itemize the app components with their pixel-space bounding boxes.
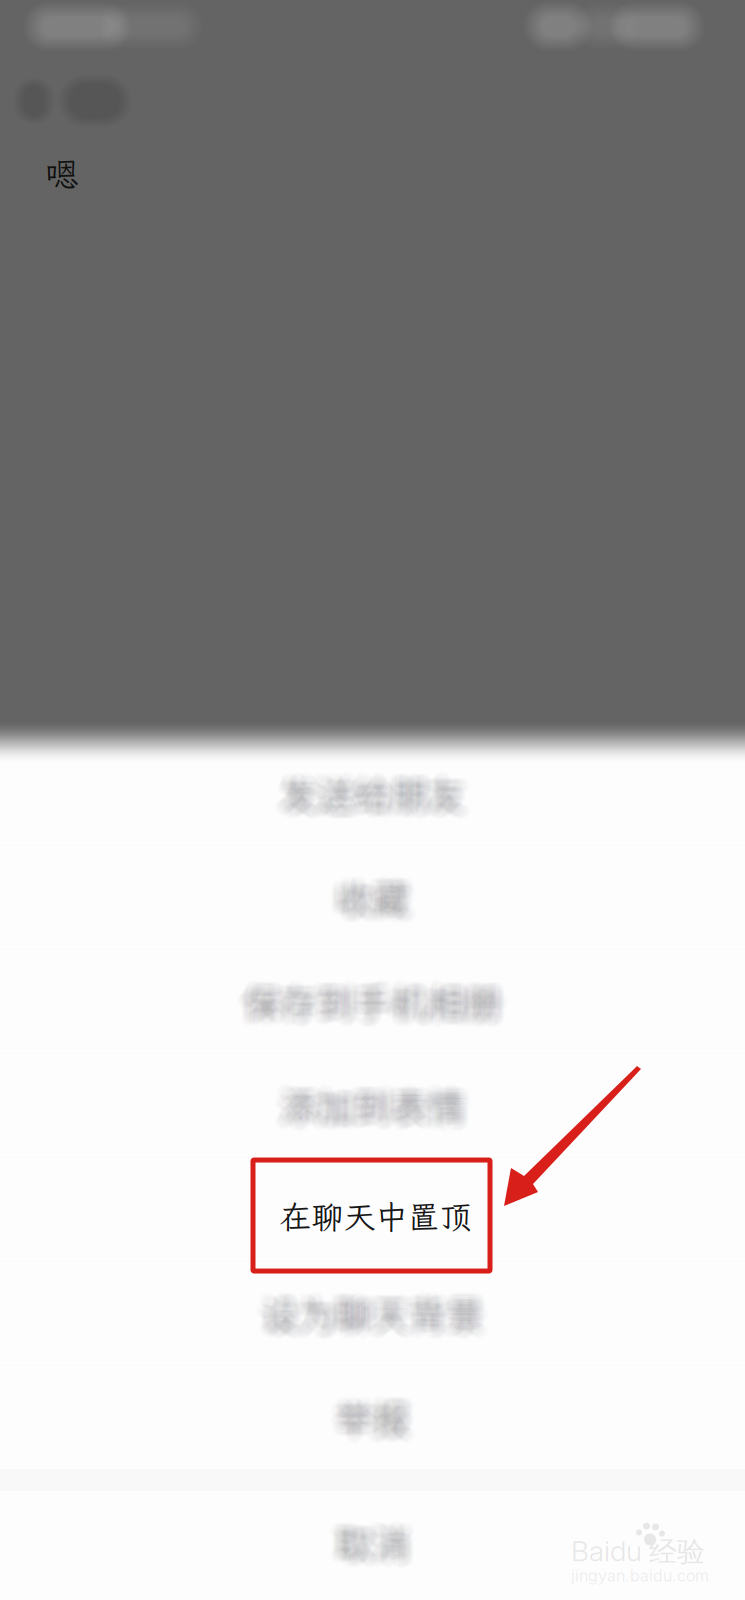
staticText: 添加到表情 — [287, 1077, 472, 1132]
staticText: 保存到手机相册 — [241, 980, 500, 1034]
staticText: 添加到表情 — [282, 1083, 467, 1137]
staticText: 添加到表情 — [280, 1086, 465, 1140]
button[interactable]: 取消 — [0, 1491, 745, 1594]
staticText: 保存到手机相册 — [243, 970, 502, 1024]
staticText: 发送给朋友 — [279, 762, 464, 816]
button[interactable]: 添加到表情 — [0, 1054, 745, 1157]
staticText: 举报 — [334, 1390, 408, 1444]
staticText: 收藏 — [337, 868, 411, 922]
staticText: 保存到手机相册 — [243, 978, 502, 1032]
staticText: 举报 — [341, 1385, 415, 1439]
staticText: 取消 — [333, 1514, 407, 1568]
staticText: 保存到手机相册 — [238, 974, 497, 1028]
staticText: 收藏 — [333, 864, 407, 918]
staticText: 举报 — [337, 1390, 411, 1444]
staticText: 取消 — [338, 1516, 412, 1570]
staticText: 添加到表情 — [281, 1082, 466, 1136]
staticText: 嗯 — [45, 152, 78, 196]
staticText: 设为聊天背景 — [260, 1290, 482, 1344]
staticText: 设为聊天背景 — [258, 1280, 480, 1334]
staticText: 举报 — [338, 1387, 412, 1441]
staticText: 取消 — [328, 1518, 402, 1572]
staticText: 设为聊天背景 — [255, 1290, 477, 1344]
staticText: 添加到表情 — [281, 1073, 466, 1127]
staticText: 收藏 — [330, 867, 404, 921]
staticText: 取消 — [341, 1510, 415, 1564]
staticText: 设为聊天背景 — [261, 1287, 483, 1341]
button[interactable]: 收藏 — [0, 846, 745, 949]
staticText: 收藏 — [335, 871, 409, 925]
staticText: 添加到表情 — [279, 1077, 464, 1131]
staticText: 设为聊天背景 — [262, 1285, 484, 1340]
staticText: 添加到表情 — [288, 1081, 473, 1135]
staticText: 保存到手机相册 — [248, 973, 507, 1027]
staticText: 添加到表情 — [279, 1080, 464, 1134]
staticText: 添加到表情 — [277, 1075, 462, 1129]
staticText: 取消 — [334, 1518, 408, 1572]
button[interactable] — [0, 1158, 745, 1261]
staticText: 发送给朋友 — [287, 764, 472, 818]
staticText: 收藏 — [341, 869, 415, 923]
staticText: 发送给朋友 — [276, 763, 461, 817]
staticText: 收藏 — [331, 867, 405, 921]
staticText: 保存到手机相册 — [246, 969, 505, 1023]
staticText: 发送给朋友 — [283, 771, 468, 825]
staticText: 取消 — [342, 1519, 416, 1573]
button[interactable]: 发送给朋友 — [0, 742, 745, 845]
staticText: 取消 — [336, 1509, 410, 1563]
staticText: 取消 — [338, 1512, 412, 1566]
staticText: 设为聊天背景 — [260, 1285, 482, 1339]
staticText: 保存到手机相册 — [241, 972, 500, 1026]
staticText: 设为聊天背景 — [265, 1281, 487, 1335]
staticText: 取消 — [329, 1519, 403, 1573]
staticText: 保存到手机相册 — [242, 981, 501, 1035]
staticText: 保存到手机相册 — [244, 977, 503, 1031]
button[interactable]: 设为聊天背景 — [0, 1262, 745, 1365]
staticText: 添加到表情 — [284, 1075, 469, 1129]
staticText: 设为聊天背景 — [254, 1289, 476, 1343]
staticText: 保存到手机相册 — [238, 978, 497, 1032]
staticText: 添加到表情 — [283, 1072, 468, 1126]
staticText: 设为聊天背景 — [253, 1287, 475, 1341]
staticText: 收藏 — [332, 872, 406, 926]
staticText: jingyan.baidu.com — [571, 1566, 709, 1585]
staticText: 举报 — [341, 1393, 415, 1447]
staticText: 收藏 — [331, 876, 405, 931]
staticText: 添加到表情 — [284, 1077, 469, 1131]
staticText: 取消 — [337, 1518, 411, 1573]
staticText: 添加到表情 — [282, 1072, 467, 1126]
staticText: 保存到手机相册 — [236, 977, 495, 1031]
button[interactable]: 举报 — [0, 1366, 745, 1469]
staticText: 发送给朋友 — [285, 765, 470, 819]
staticText: 取消 — [334, 1511, 408, 1565]
staticText: 设为聊天背景 — [265, 1285, 487, 1339]
staticText: 举报 — [338, 1391, 412, 1445]
staticText: 添加到表情 — [283, 1082, 468, 1136]
staticText: 发送给朋友 — [278, 764, 463, 818]
staticText: 保存到手机相册 — [239, 971, 498, 1025]
staticText: 添加到表情 — [282, 1076, 467, 1130]
staticText: 取消 — [332, 1513, 406, 1567]
staticText: 收藏 — [335, 878, 409, 932]
staticText: 添加到表情 — [276, 1076, 461, 1130]
staticText: 收藏 — [341, 871, 415, 925]
staticText: 发送给朋友 — [282, 763, 467, 817]
staticText: 设为聊天背景 — [258, 1288, 480, 1342]
staticText: 收藏 — [332, 864, 406, 918]
staticText: 发送给朋友 — [286, 767, 471, 821]
staticText: 添加到表情 — [274, 1083, 459, 1137]
staticText: 添加到表情 — [284, 1080, 469, 1134]
staticText: 收藏 — [331, 874, 405, 928]
staticText: 收藏 — [337, 873, 411, 928]
staticText: 发送给朋友 — [280, 762, 465, 816]
staticText: 设为聊天背景 — [263, 1280, 485, 1334]
staticText: 设为聊天背景 — [261, 1291, 483, 1345]
staticText: 保存到手机相册 — [245, 968, 504, 1022]
staticText: 收藏 — [338, 877, 412, 931]
staticText: 举报 — [341, 1389, 415, 1443]
staticText: 举报 — [336, 1385, 410, 1439]
button[interactable]: 保存到手机相册 — [0, 950, 745, 1053]
staticText: 设为聊天背景 — [259, 1283, 481, 1337]
staticText: 保存到手机相册 — [245, 980, 504, 1034]
staticText: 设为聊天背景 — [266, 1289, 488, 1343]
